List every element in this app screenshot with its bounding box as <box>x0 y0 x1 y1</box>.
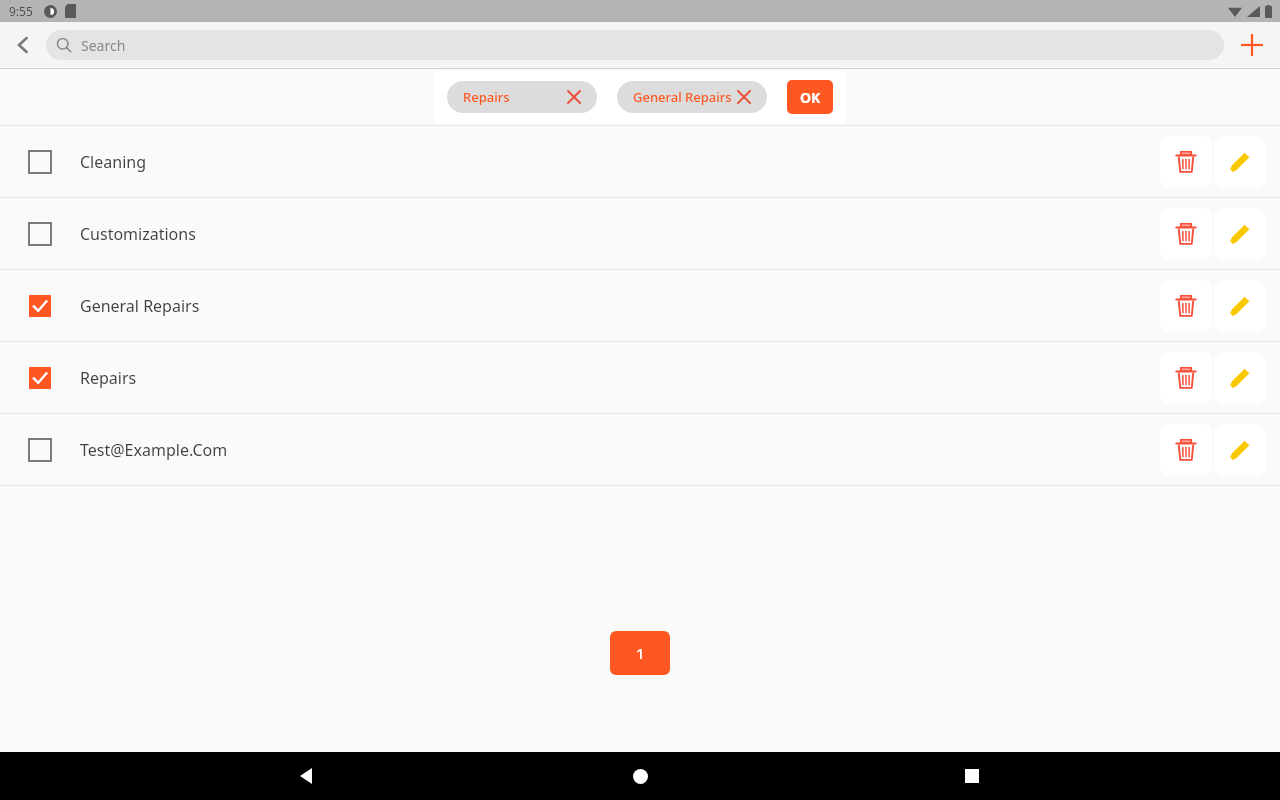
button[interactable]: Unchecked <box>0 414 1280 485</box>
button[interactable]: Edit <box>1214 208 1266 260</box>
staticText: General Repairs <box>80 295 200 317</box>
button[interactable]: Unchecked <box>0 126 1280 197</box>
button[interactable]: Home <box>616 752 664 800</box>
button[interactable]: Unchecked <box>29 223 51 245</box>
staticText: 1 <box>636 643 645 663</box>
button[interactable]: Delete <box>1160 280 1212 332</box>
staticText: Search <box>81 36 126 55</box>
button[interactable]: Unchecked <box>29 439 51 461</box>
button[interactable]: Back <box>0 22 46 68</box>
button[interactable]: Recents <box>948 752 996 800</box>
button[interactable]: OK <box>787 80 833 114</box>
button[interactable]: Checked <box>29 367 51 389</box>
button[interactable]: Unchecked <box>29 151 51 173</box>
button[interactable]: Checked <box>0 342 1280 413</box>
button[interactable]: Checked <box>29 295 51 317</box>
button[interactable]: Repairs <box>447 81 597 113</box>
staticText: Cleaning <box>80 151 146 173</box>
staticText: Repairs <box>463 88 510 106</box>
button[interactable]: Back <box>284 752 332 800</box>
button[interactable]: Delete <box>1160 136 1212 188</box>
button[interactable]: 1 <box>610 631 670 675</box>
button[interactable]: Checked <box>0 270 1280 341</box>
staticText: General Repairs <box>633 88 732 106</box>
button[interactable]: Delete <box>1160 352 1212 404</box>
button[interactable]: Edit <box>1214 424 1266 476</box>
staticText: Test@Example.Com <box>80 439 228 461</box>
button[interactable]: Delete <box>1160 208 1212 260</box>
button[interactable]: Edit <box>1214 280 1266 332</box>
staticText: OK <box>800 88 821 107</box>
button[interactable]: Edit <box>1214 352 1266 404</box>
button[interactable]: Add <box>1224 22 1280 68</box>
staticText: Repairs <box>80 367 137 389</box>
staticText: 9:55 <box>9 3 33 19</box>
button[interactable]: Delete <box>1160 424 1212 476</box>
button[interactable]: Search <box>46 30 1224 60</box>
button[interactable]: Unchecked <box>0 198 1280 269</box>
button[interactable]: Edit <box>1214 136 1266 188</box>
staticText: Customizations <box>80 223 196 245</box>
button[interactable]: General Repairs <box>617 81 767 113</box>
